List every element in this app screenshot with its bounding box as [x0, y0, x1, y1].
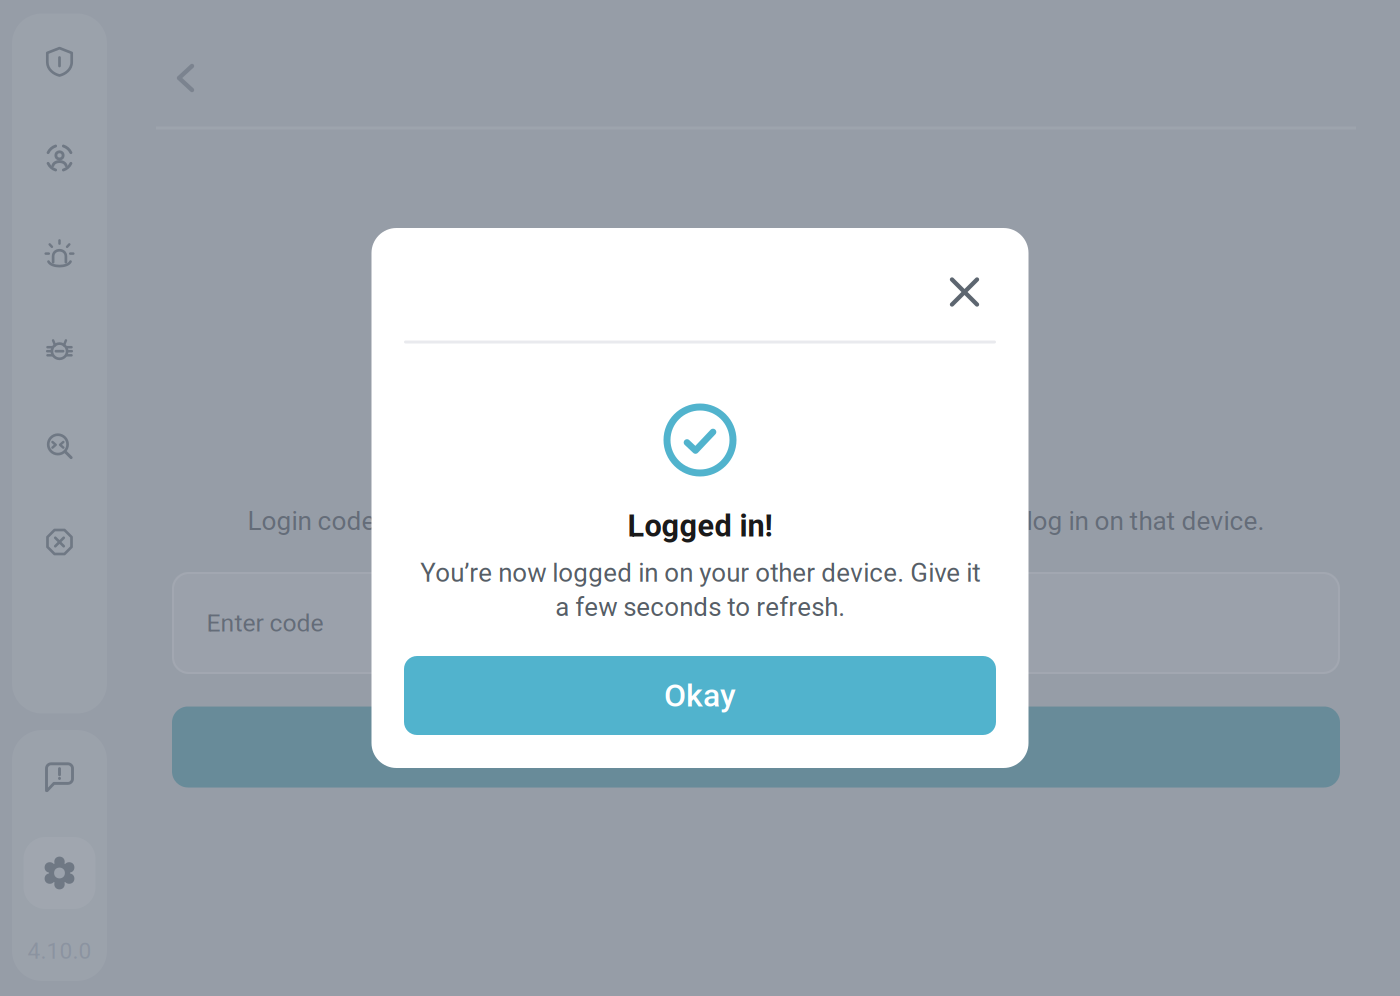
button[interactable]: Close [931, 259, 997, 325]
staticText: Okay [664, 677, 736, 714]
button[interactable]: Identity [23, 122, 95, 194]
button[interactable]: Malware [23, 314, 95, 386]
button[interactable]: Alerts [23, 218, 95, 290]
staticText: 4.10.0 [27, 938, 91, 964]
button[interactable]: Anti-tracking [23, 410, 95, 482]
staticText: Enter code [206, 608, 323, 637]
button[interactable]: Support [23, 741, 95, 813]
button[interactable]: Back [154, 46, 218, 110]
staticText: Login codes are shown on your other devi… [247, 506, 1264, 536]
button[interactable]: Protection [23, 26, 95, 98]
button[interactable]: Ad blocker [23, 506, 95, 578]
staticText: You’re now logged in on your other devic… [420, 558, 980, 622]
button[interactable]: Okay [404, 656, 996, 735]
button[interactable]: Settings [23, 837, 95, 909]
staticText: Logged in! [627, 508, 772, 544]
